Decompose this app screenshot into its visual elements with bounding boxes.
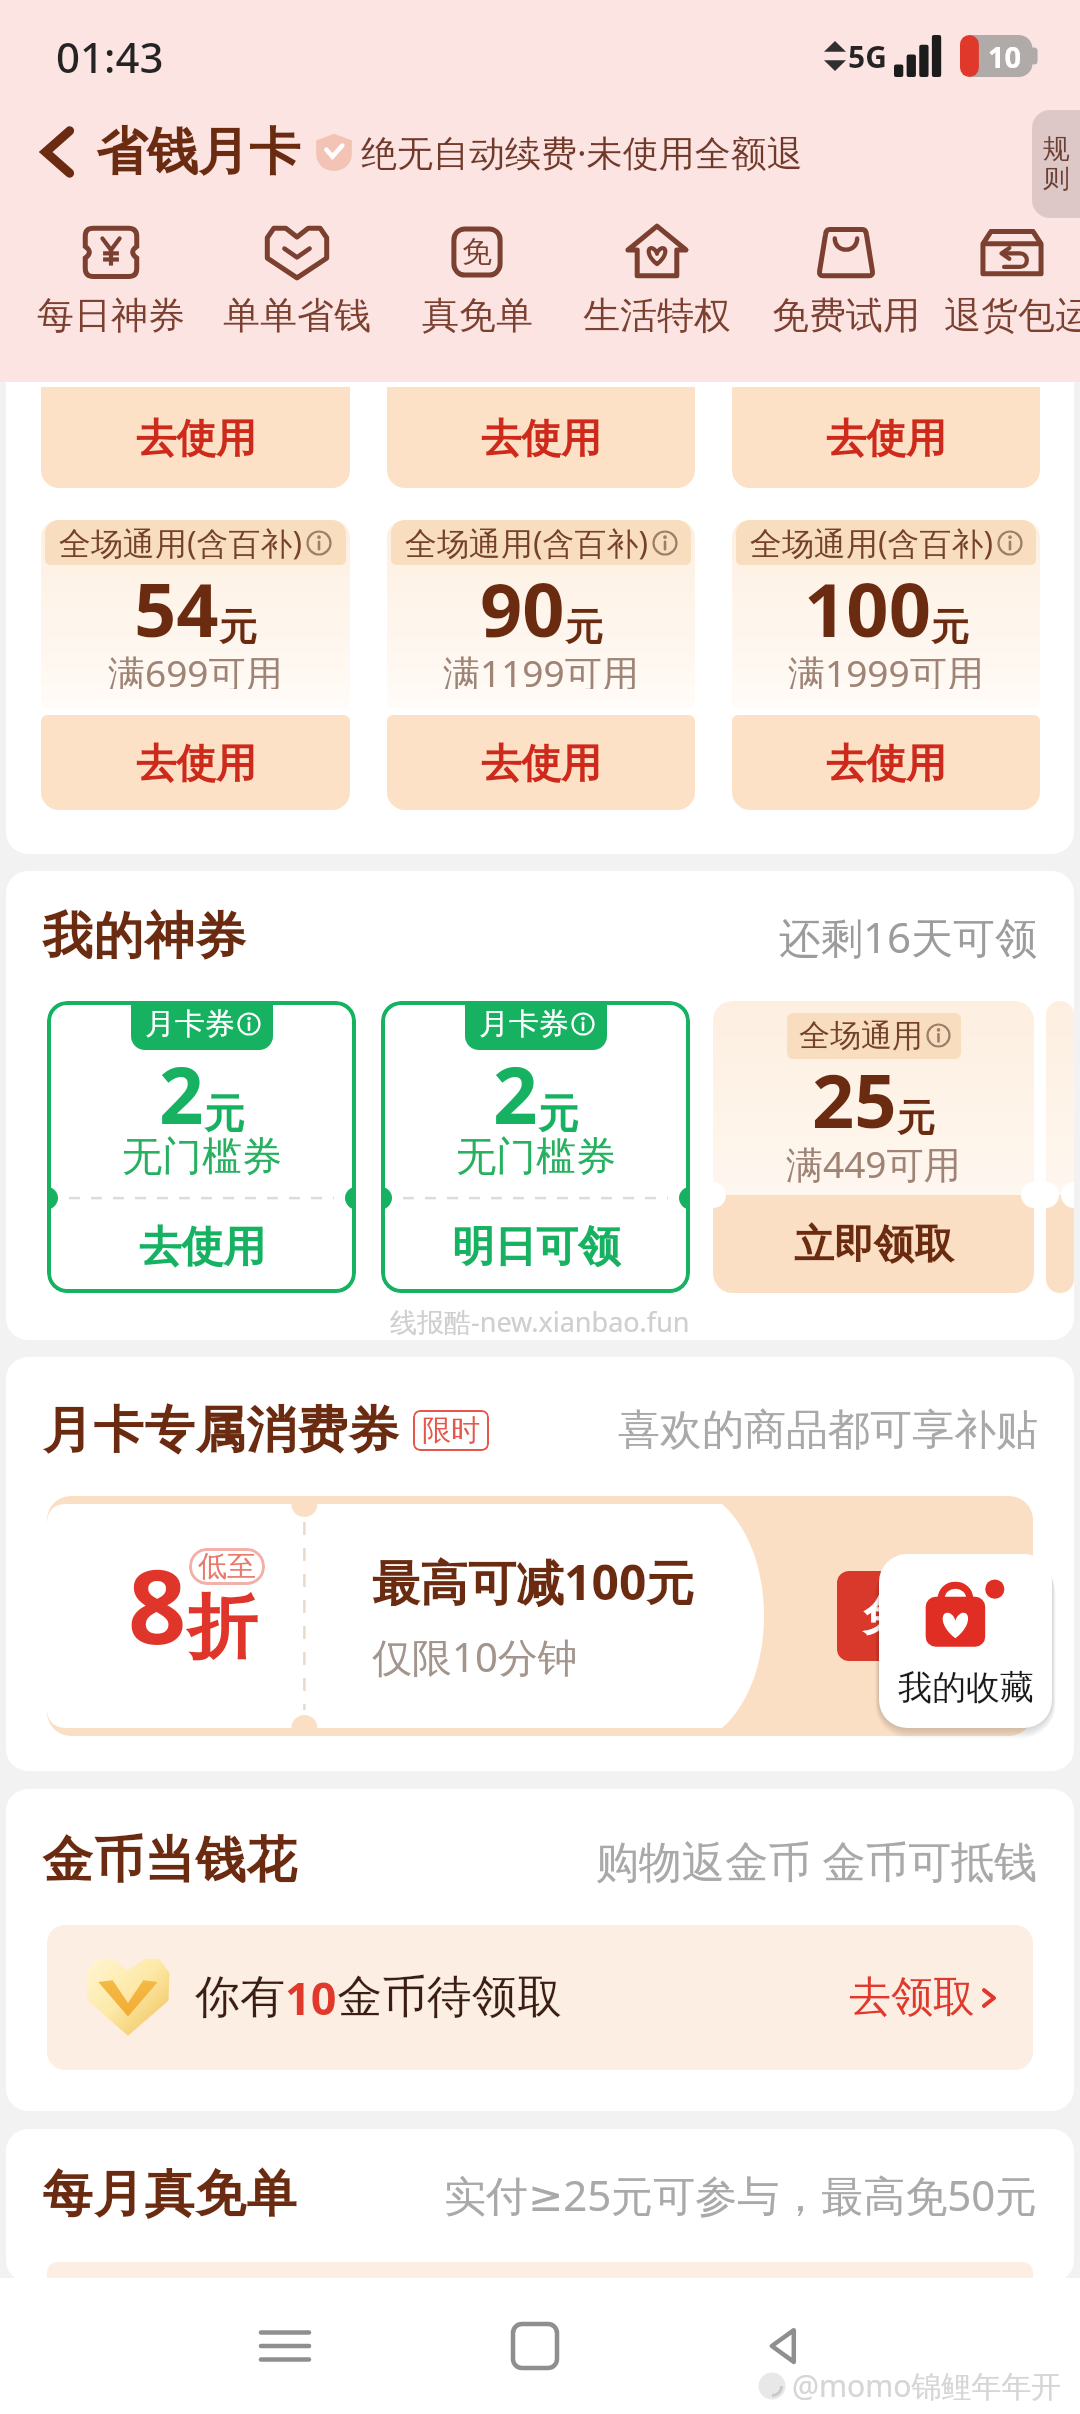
staticText: 免费领 — [863, 1591, 983, 1641]
staticText: 5G — [848, 36, 887, 77]
staticText: 规 则 — [1043, 132, 1070, 196]
button[interactable]: 退货包运 — [944, 218, 1080, 339]
button[interactable]: 我的收藏 — [879, 1554, 1052, 1728]
staticText: 免费试用 — [772, 292, 920, 339]
staticText: 月卡专属消费券 — [42, 1399, 399, 1462]
staticText: 满449可用 — [786, 1138, 961, 1189]
staticText: 无门槛券 — [456, 1131, 616, 1181]
staticText: 线报酷-new.xianbao.fun — [390, 1303, 690, 1340]
staticText: 月卡券 — [145, 1005, 235, 1043]
staticText: 生活特权 — [583, 292, 731, 339]
staticText: 限时 — [422, 1412, 480, 1449]
button[interactable]: Back — [660, 2278, 910, 2414]
staticText: 去领取 — [849, 1971, 975, 2024]
staticText: 25 — [812, 1049, 897, 1150]
button[interactable]: 免费领 — [837, 1571, 1009, 1661]
staticText: 去使用 — [139, 1221, 265, 1274]
staticText: 金币待领取 — [337, 1969, 562, 2026]
staticText: 购物返金币 金币可抵钱 — [596, 1831, 1038, 1890]
button[interactable]: Back — [26, 121, 88, 183]
staticText: 免 — [462, 233, 492, 271]
staticText: 10 — [988, 37, 1022, 76]
button[interactable]: 每日神券 — [17, 218, 205, 339]
staticText: 绝无自动续费·未使用全额退 — [361, 128, 803, 177]
staticText: 8 — [128, 1535, 187, 1674]
staticText: 全场通用(含百补) — [405, 521, 649, 565]
staticText: 你有 — [195, 1969, 285, 2026]
staticText: 全场通用 — [799, 1016, 923, 1055]
staticText: 2 — [493, 1041, 538, 1147]
staticText: 明日可领 — [452, 1221, 620, 1274]
staticText: 去使用 — [826, 738, 946, 788]
staticText: 满1999可用 — [788, 647, 984, 689]
staticText: 我的神券 — [42, 905, 246, 968]
staticText: 仅限10分钟 — [372, 1629, 578, 1684]
staticText: 真免单 — [422, 292, 533, 339]
button[interactable]: 免费试用 — [748, 218, 944, 339]
staticText: 2 — [159, 1041, 204, 1147]
staticText: 满1199可用 — [443, 647, 639, 689]
button[interactable] — [1046, 1001, 1074, 1293]
staticText: 去使用 — [481, 738, 601, 788]
staticText: @momo锦鲤年年开 — [792, 2365, 1062, 2406]
staticText: 喜欢的商品都可享补贴 — [618, 1404, 1038, 1457]
staticText: 元 — [931, 603, 969, 651]
staticText: 我的收藏 — [898, 1666, 1034, 1709]
staticText: 元 — [897, 1094, 935, 1142]
button[interactable]: Home — [410, 2278, 660, 2414]
staticText: 01:43 — [56, 28, 164, 85]
staticText: 满699可用 — [108, 647, 283, 689]
staticText: 元 — [538, 1088, 578, 1138]
staticText: 10 — [285, 1967, 337, 2028]
staticText: 元 — [565, 603, 603, 651]
staticText: 元 — [204, 1088, 244, 1138]
button[interactable]: 月卡券 — [47, 1001, 356, 1293]
staticText: 每日神券 — [37, 292, 185, 339]
staticText: 去使用 — [481, 413, 601, 463]
button[interactable]: 全场通用 — [713, 1001, 1034, 1293]
staticText: 去使用 — [136, 413, 256, 463]
staticText: 金币当钱花 — [42, 1829, 297, 1892]
button[interactable]: 去使用 — [387, 387, 695, 854]
staticText: 全场通用(含百补) — [750, 521, 994, 565]
button[interactable]: 生活特权 — [566, 218, 748, 339]
staticText: 去使用 — [136, 738, 256, 788]
staticText: 90 — [480, 558, 565, 659]
staticText: 单单省钱 — [223, 292, 371, 339]
button[interactable]: 单单省钱 — [205, 218, 388, 339]
staticText: 月卡券 — [479, 1005, 569, 1043]
staticText: 全场通用(含百补) — [59, 521, 303, 565]
staticText: 退货包运 — [944, 292, 1080, 339]
staticText: 100 — [804, 558, 931, 659]
staticText: 54 — [134, 558, 219, 659]
button[interactable]: 去使用 — [41, 387, 350, 854]
staticText: 去使用 — [826, 413, 946, 463]
staticText: 还剩16天可领 — [779, 908, 1038, 965]
staticText: 省钱月卡 — [96, 120, 300, 184]
button[interactable]: 去使用 — [732, 387, 1040, 854]
staticText: 折 — [187, 1584, 257, 1672]
staticText: 实付≥25元可参与，最高免50元 — [444, 2166, 1038, 2223]
staticText: 立即领取 — [794, 1219, 954, 1269]
button[interactable]: 月卡券 — [381, 1001, 690, 1293]
staticText: 无门槛券 — [122, 1131, 282, 1181]
staticText: 低至 — [198, 1548, 256, 1585]
button[interactable]: Recent apps — [160, 2278, 410, 2414]
button[interactable]: 规 则 — [1032, 110, 1080, 218]
staticText: 最高可减100元 — [372, 1549, 695, 1615]
button[interactable]: 8 — [47, 1496, 1033, 1736]
button[interactable]: 免 — [388, 218, 566, 339]
staticText: 每月真免单 — [42, 2163, 297, 2226]
staticText: 元 — [219, 603, 257, 651]
button[interactable]: 你有 — [47, 1925, 1033, 2070]
